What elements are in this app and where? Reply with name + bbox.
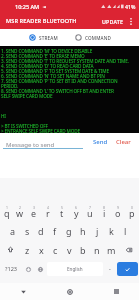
button[interactable]: s bbox=[20, 221, 34, 240]
staticText: UPDATE bbox=[102, 18, 124, 25]
button[interactable]: n bbox=[90, 240, 104, 259]
button[interactable]: 4 bbox=[41, 203, 55, 221]
button[interactable]: d bbox=[34, 221, 48, 240]
staticText: 7. SEND COMMAND 'P' TO SET BT ID AND CON… bbox=[1, 78, 118, 83]
button[interactable]: c bbox=[48, 240, 62, 259]
staticText: k bbox=[109, 225, 114, 237]
staticText: 4. SEND COMMAND 'D' TO READ CARD DATA bbox=[1, 63, 94, 68]
staticText: MSR READER BLUETOOTH bbox=[6, 17, 77, 25]
staticText: Message to send bbox=[6, 140, 55, 148]
button[interactable]: COMMAND bbox=[75, 31, 112, 44]
staticText: 2. SEND COMMAND 'E' TO ERASE MEMO bbox=[1, 53, 85, 58]
staticText: 10:25 AM bbox=[15, 3, 40, 11]
staticText: STREAM bbox=[39, 35, 58, 41]
staticText: Send bbox=[93, 138, 108, 146]
staticText: ?123 bbox=[5, 265, 18, 273]
staticText: SELF SWIPE CARD MODE bbox=[1, 93, 53, 98]
button[interactable]: z bbox=[20, 240, 34, 259]
button[interactable]: 6 bbox=[69, 203, 83, 221]
button[interactable]: Recents bbox=[93, 283, 139, 300]
staticText: 3 bbox=[33, 205, 35, 210]
button[interactable]: Backspace bbox=[118, 240, 139, 259]
staticText: 9 bbox=[117, 205, 119, 210]
button[interactable]: Message to send bbox=[0, 133, 83, 151]
staticText: q bbox=[4, 207, 10, 219]
staticText: p bbox=[129, 207, 135, 219]
button[interactable]: Emoji bbox=[22, 259, 34, 279]
staticText: . bbox=[109, 263, 111, 273]
button[interactable]: Enter bbox=[117, 262, 138, 276]
staticText: 1 bbox=[6, 205, 8, 210]
button[interactable]: . bbox=[103, 259, 116, 279]
button[interactable]: 8 bbox=[97, 203, 111, 221]
button[interactable]: v bbox=[62, 240, 76, 259]
staticText: d bbox=[38, 225, 44, 237]
staticText: w bbox=[16, 207, 24, 219]
staticText: 6. SEND COMMAND 'N' TO SET NAME AND BT P… bbox=[1, 73, 105, 78]
staticText: c bbox=[53, 244, 58, 256]
button[interactable]: a bbox=[6, 221, 20, 240]
button[interactable]: English bbox=[47, 262, 103, 276]
staticText: 8. SEND COMMAND 'L' TO SWITCH OFF BT AND… bbox=[1, 88, 114, 93]
staticText: 8 bbox=[103, 205, 105, 210]
staticText: f bbox=[53, 225, 57, 237]
button[interactable]: 1 bbox=[0, 203, 13, 221]
button[interactable]: x bbox=[34, 240, 48, 259]
staticText: PERIOD. bbox=[1, 83, 19, 88]
button[interactable]: UPDATE bbox=[100, 15, 125, 28]
button[interactable]: h bbox=[76, 221, 90, 240]
button[interactable]: 5 bbox=[55, 203, 69, 221]
staticText: HI bbox=[1, 113, 6, 118]
staticText: i bbox=[103, 207, 106, 219]
staticText: e bbox=[31, 207, 37, 219]
button[interactable]: Send bbox=[90, 133, 112, 151]
staticText: r bbox=[46, 207, 50, 219]
staticText: a bbox=[10, 225, 16, 237]
staticText: English bbox=[67, 266, 83, 272]
staticText: 0 bbox=[131, 205, 133, 210]
button[interactable]: Back bbox=[0, 283, 47, 300]
button[interactable]: ?123 bbox=[0, 259, 22, 279]
button[interactable]: More options bbox=[125, 16, 136, 27]
staticText: t bbox=[60, 207, 64, 219]
staticText: 41% bbox=[125, 3, 136, 10]
staticText: j bbox=[96, 225, 99, 237]
button[interactable]: g bbox=[62, 221, 76, 240]
staticText: 4 bbox=[47, 205, 49, 210]
button[interactable]: Clear bbox=[112, 133, 139, 151]
button[interactable]: 9 bbox=[111, 203, 125, 221]
button[interactable]: STREAM bbox=[29, 31, 58, 44]
button[interactable]: l bbox=[118, 221, 132, 240]
staticText: o bbox=[115, 207, 121, 219]
button[interactable]: 7 bbox=[83, 203, 97, 221]
staticText: l bbox=[124, 225, 127, 237]
staticText: u bbox=[87, 207, 93, 219]
staticText: g bbox=[66, 225, 72, 237]
staticText: 5. SEND COMMAND 'F' TO SET SYSTEM DATE &… bbox=[1, 68, 109, 73]
staticText: y bbox=[74, 207, 79, 219]
staticText: COMMAND bbox=[85, 35, 112, 41]
button[interactable]: f bbox=[48, 221, 62, 240]
staticText: 6 bbox=[75, 205, 77, 210]
staticText: b bbox=[80, 244, 86, 256]
staticText: x bbox=[39, 244, 44, 256]
staticText: 5 bbox=[61, 205, 63, 210]
button[interactable]: Home bbox=[47, 283, 93, 300]
staticText: 7 bbox=[89, 205, 91, 210]
staticText: 1. SEND COMMAND 'M' TO DEVICE DISABLE bbox=[1, 48, 93, 53]
button[interactable]: 3 bbox=[27, 203, 41, 221]
button[interactable]: b bbox=[76, 240, 90, 259]
button[interactable]: Change keyboard language bbox=[34, 259, 47, 279]
button[interactable]: 2 bbox=[13, 203, 27, 221]
button[interactable]: k bbox=[104, 221, 118, 240]
button[interactable]: Shift bbox=[0, 240, 20, 259]
staticText: 3. SEND COMMAND 'T' TO REQUEST SYSTEM DA… bbox=[1, 58, 129, 63]
button[interactable]: j bbox=[90, 221, 104, 240]
button[interactable]: m bbox=[104, 240, 118, 259]
button[interactable]: 0 bbox=[125, 203, 139, 221]
staticText: 2 bbox=[19, 205, 21, 210]
staticText: > BT IS SWITCHED OFF bbox=[1, 123, 48, 128]
staticText: n bbox=[94, 244, 100, 256]
staticText: m bbox=[107, 244, 116, 256]
staticText: v bbox=[67, 244, 72, 256]
